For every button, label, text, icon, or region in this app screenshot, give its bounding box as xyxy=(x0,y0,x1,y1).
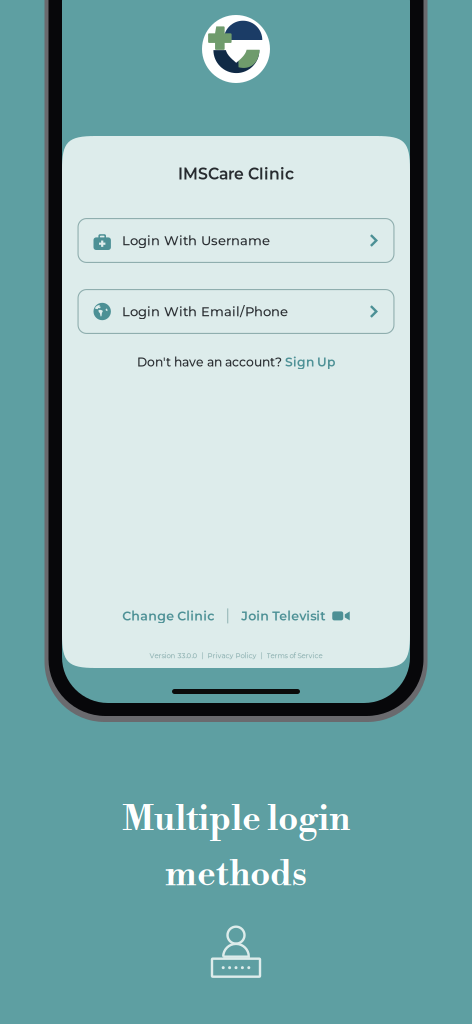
staticText: Privacy Policy xyxy=(207,651,256,660)
staticText: Version 33.0.0 xyxy=(149,651,197,660)
staticText: Terms of Service xyxy=(266,651,322,660)
button[interactable]: Sign Up xyxy=(285,354,335,369)
staticText: Login With Email/Phone xyxy=(122,303,288,319)
staticText: methods xyxy=(165,853,307,897)
button[interactable]: Login With Username xyxy=(77,218,394,263)
staticText: IMSCare Clinic xyxy=(178,164,294,183)
staticText: Sign Up xyxy=(285,354,335,369)
button[interactable]: Join Televisit xyxy=(228,608,350,624)
button[interactable]: Login With Email/Phone xyxy=(77,289,394,334)
staticText: Don't have an account? xyxy=(137,354,285,369)
staticText: | xyxy=(197,651,207,660)
staticText: Join Televisit xyxy=(241,608,325,624)
staticText: Multiple login xyxy=(122,798,350,841)
button[interactable]: Change Clinic xyxy=(122,608,227,624)
staticText: Change Clinic xyxy=(122,608,214,624)
button[interactable]: Privacy Policy xyxy=(207,651,256,660)
staticText: Login With Username xyxy=(122,232,270,248)
button[interactable]: Terms of Service xyxy=(266,651,322,660)
staticText: | xyxy=(256,651,266,660)
